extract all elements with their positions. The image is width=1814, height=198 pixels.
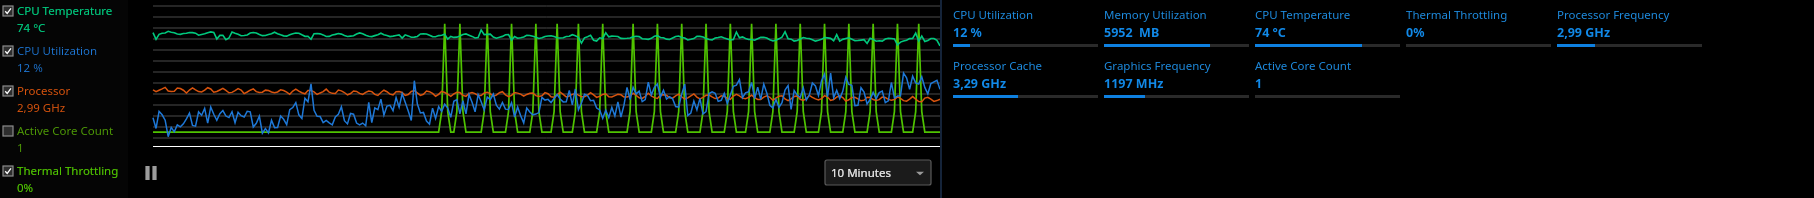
button[interactable]: Toggle Processor Frequency bbox=[1, 82, 128, 117]
staticText: 0% bbox=[17, 180, 34, 196]
button[interactable]: Toggle Thermal Throttling bbox=[1, 162, 128, 197]
button[interactable]: Processor Frequency bbox=[1557, 7, 1702, 49]
button[interactable]: Active Core Count bbox=[1255, 58, 1400, 100]
staticText: Processor Cache Frequency bbox=[953, 58, 1101, 74]
button[interactable]: Toggle CPU Utilization bbox=[1, 42, 128, 77]
staticText: Processor Frequency bbox=[17, 83, 128, 99]
staticText: Memory Utilization bbox=[1104, 7, 1207, 23]
other: Toggle CPU Temperature bbox=[3, 6, 13, 16]
staticText: 1197 MHz bbox=[1104, 75, 1164, 92]
button[interactable]: Thermal Throttling bbox=[1406, 7, 1551, 49]
staticText: CPU Temperature bbox=[1255, 7, 1351, 23]
other: Toggle Active Core Count bbox=[3, 126, 13, 136]
staticText: CPU Temperature bbox=[17, 3, 113, 19]
staticText: Active Core Count bbox=[17, 123, 114, 139]
staticText: CPU Utilization bbox=[953, 7, 1034, 23]
staticText: 1 bbox=[1255, 75, 1263, 92]
staticText: 10 Minutes bbox=[831, 165, 891, 181]
button[interactable]: 10 Minutes bbox=[825, 160, 931, 185]
other: Toggle Thermal Throttling bbox=[3, 166, 13, 176]
button[interactable]: CPU Utilization bbox=[953, 7, 1098, 49]
button[interactable]: Memory Utilization bbox=[1104, 7, 1249, 49]
staticText: 12 % bbox=[953, 24, 982, 41]
staticText: 2,99 GHz bbox=[1557, 24, 1611, 41]
other: Toggle Processor Frequency bbox=[3, 86, 13, 96]
staticText: Thermal Throttling bbox=[1406, 7, 1508, 23]
button[interactable]: Processor Cache Frequency bbox=[953, 58, 1101, 100]
staticText: Graphics Frequency bbox=[1104, 58, 1211, 74]
button[interactable]: Graphics Frequency bbox=[1104, 58, 1249, 100]
staticText: 74 °C bbox=[1255, 24, 1286, 41]
button[interactable]: CPU Temperature bbox=[1255, 7, 1400, 49]
staticText: Thermal Throttling bbox=[17, 163, 119, 179]
staticText: 3,29 GHz bbox=[953, 75, 1007, 92]
staticText: 2,99 GHz bbox=[17, 100, 66, 116]
button[interactable]: Toggle CPU Temperature bbox=[1, 2, 128, 37]
button[interactable]: Pause bbox=[136, 158, 166, 188]
button[interactable]: Toggle Active Core Count bbox=[1, 122, 128, 157]
staticText: 12 % bbox=[17, 60, 43, 76]
staticText: 5952 MB bbox=[1104, 24, 1160, 41]
staticText: 0% bbox=[1406, 24, 1425, 41]
staticText: CPU Utilization bbox=[17, 43, 98, 59]
staticText: 1 bbox=[17, 140, 24, 156]
other: Toggle CPU Utilization bbox=[3, 46, 13, 56]
staticText: Active Core Count bbox=[1255, 58, 1352, 74]
staticText: 74 °C bbox=[17, 20, 46, 36]
staticText: Processor Frequency bbox=[1557, 7, 1670, 23]
